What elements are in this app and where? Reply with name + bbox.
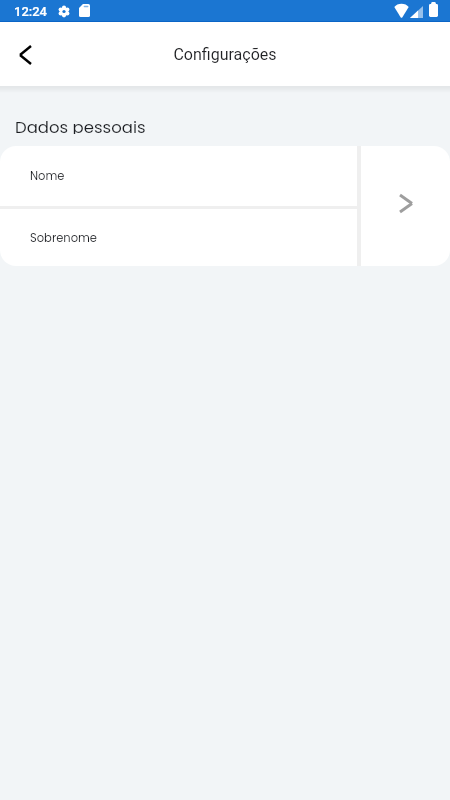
button[interactable]: Back — [0, 29, 50, 79]
staticText: Configurações — [173, 45, 277, 64]
staticText: 12:24 — [14, 4, 48, 19]
button[interactable]: Edit personal data — [361, 146, 450, 266]
button[interactable]: Sobrenome — [0, 209, 357, 266]
staticText: Sobrenome — [30, 230, 97, 246]
staticText: Nome — [30, 168, 65, 184]
staticText: Dados pessoais — [15, 116, 146, 134]
button[interactable]: Nome — [0, 146, 357, 206]
